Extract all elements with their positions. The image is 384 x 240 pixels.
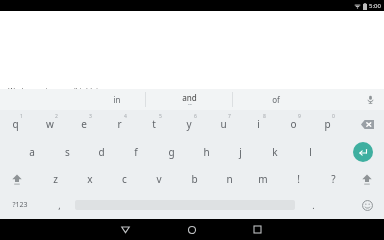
staticText: h [203,145,210,159]
button[interactable]: Back [110,219,140,240]
staticText: g [168,145,175,159]
button[interactable]: j [223,138,257,166]
staticText: q [12,117,19,131]
button[interactable]: m [246,166,280,192]
staticText: j [239,145,242,159]
staticText: ? [331,172,336,186]
staticText: 3 [89,113,92,120]
button[interactable]: Shift [350,166,384,192]
staticText: t [152,117,156,131]
staticText: 7 [228,113,231,120]
button[interactable]: d [84,138,118,166]
staticText: f [134,145,138,159]
staticText: 0 [332,113,335,120]
staticText: , [58,199,61,211]
staticText: 8 [263,113,266,120]
staticText: k [272,145,278,159]
staticText: u [220,117,227,131]
staticText: 1 [20,113,23,120]
button[interactable]: Enter [346,138,380,166]
staticText: p [324,117,331,131]
button[interactable]: , [44,192,74,218]
button[interactable]: h [189,138,223,166]
button[interactable]: c [107,166,141,192]
button[interactable]: o [276,110,310,138]
staticText: Works great on small tablets [8,86,102,96]
staticText: a [29,145,35,159]
button[interactable]: v [142,166,176,192]
button[interactable]: n [212,166,246,192]
button[interactable]: t [137,110,171,138]
staticText: w [46,117,54,131]
button[interactable]: ! [281,166,315,192]
button[interactable]: Recent apps [242,219,272,240]
staticText: r [117,117,122,131]
button[interactable]: e [67,110,101,138]
button[interactable]: a [15,138,49,166]
staticText: s [65,145,70,159]
staticText: in [113,94,121,105]
staticText: ••• [188,103,192,107]
staticText: of [272,94,280,105]
button[interactable]: l [293,138,327,166]
button[interactable]: in [89,89,145,110]
staticText: 5 [159,113,162,120]
staticText: n [226,172,233,186]
button[interactable]: of [233,89,319,110]
button[interactable]: . [298,192,328,218]
staticText: m [258,172,268,186]
button[interactable]: g [154,138,188,166]
staticText: 2 [55,113,58,120]
staticText: e [81,117,87,131]
staticText: v [156,172,162,186]
staticText: z [53,172,58,186]
staticText: and [182,92,197,103]
button[interactable]: Backspace [350,110,384,138]
staticText: ! [297,172,300,186]
button[interactable]: k [258,138,292,166]
button[interactable]: p [310,110,344,138]
button[interactable]: s [50,138,84,166]
button[interactable]: y [172,110,206,138]
button[interactable]: x [73,166,107,192]
button[interactable]: u [206,110,240,138]
button[interactable]: f [119,138,153,166]
button[interactable]: Voice input [356,89,384,110]
button[interactable]: q [0,110,32,138]
button[interactable]: i [241,110,275,138]
staticText: y [186,117,192,131]
button[interactable]: b [177,166,211,192]
staticText: d [98,145,105,159]
button[interactable]: Emoji [350,192,384,218]
staticText: l [309,145,312,159]
staticText: 5:00 [369,2,381,10]
button[interactable]: and [146,89,232,110]
button[interactable]: r [102,110,136,138]
staticText: c [122,172,127,186]
staticText: o [290,117,297,131]
staticText: 4 [124,113,127,120]
staticText: x [87,172,93,186]
button[interactable]: z [38,166,72,192]
button[interactable]: w [33,110,67,138]
button[interactable]: Home [177,219,207,240]
button[interactable]: ? [316,166,350,192]
staticText: 9 [298,113,301,120]
staticText: b [191,172,198,186]
staticText: 6 [194,113,197,120]
staticText: . [312,199,315,211]
button[interactable]: Shift [0,166,34,192]
button[interactable]: ?123 [0,192,40,218]
staticText: i [257,117,260,131]
staticText: ?123 [12,200,28,210]
